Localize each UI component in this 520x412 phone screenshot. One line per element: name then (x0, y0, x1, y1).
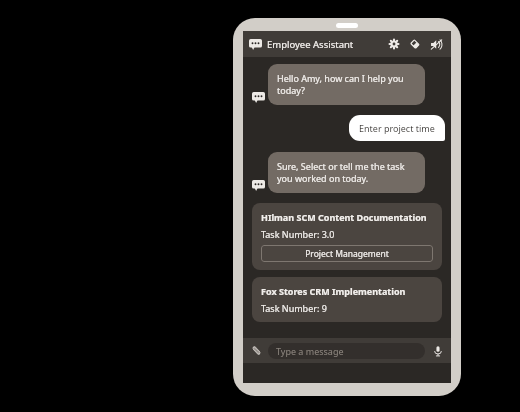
button[interactable]: Sure, Select or tell me the task you wor… (268, 152, 425, 193)
staticText: HIlman SCM Content Documentation (261, 211, 427, 223)
staticText: Project Management (305, 248, 389, 260)
button[interactable]: Settings (385, 35, 403, 53)
button[interactable]: Attach file (248, 342, 265, 359)
button[interactable]: Project Management (261, 245, 433, 262)
staticText: Employee Assistant (267, 38, 354, 51)
staticText: Fox Stores CRM Implementation (261, 285, 406, 297)
button[interactable]: Clear conversation (406, 35, 424, 53)
staticText: Sure, Select or tell me the task you wor… (277, 160, 416, 185)
button[interactable]: Enter project time (349, 115, 445, 141)
staticText: Enter project time (359, 122, 435, 134)
staticText: Hello Amy, how can I help you today? (277, 72, 416, 97)
button[interactable]: Mute (427, 35, 445, 53)
button[interactable]: HIlman SCM Content Documentation (252, 203, 442, 270)
staticText: Task Number: 9 (261, 302, 327, 314)
staticText: Type a message (276, 345, 344, 357)
staticText: Task Number: 3.0 (261, 228, 335, 240)
button[interactable]: Hello Amy, how can I help you today? (268, 64, 425, 105)
button[interactable]: Type a message (268, 343, 425, 359)
button[interactable]: Fox Stores CRM Implementation (252, 277, 442, 322)
button[interactable]: Voice input (429, 342, 446, 359)
